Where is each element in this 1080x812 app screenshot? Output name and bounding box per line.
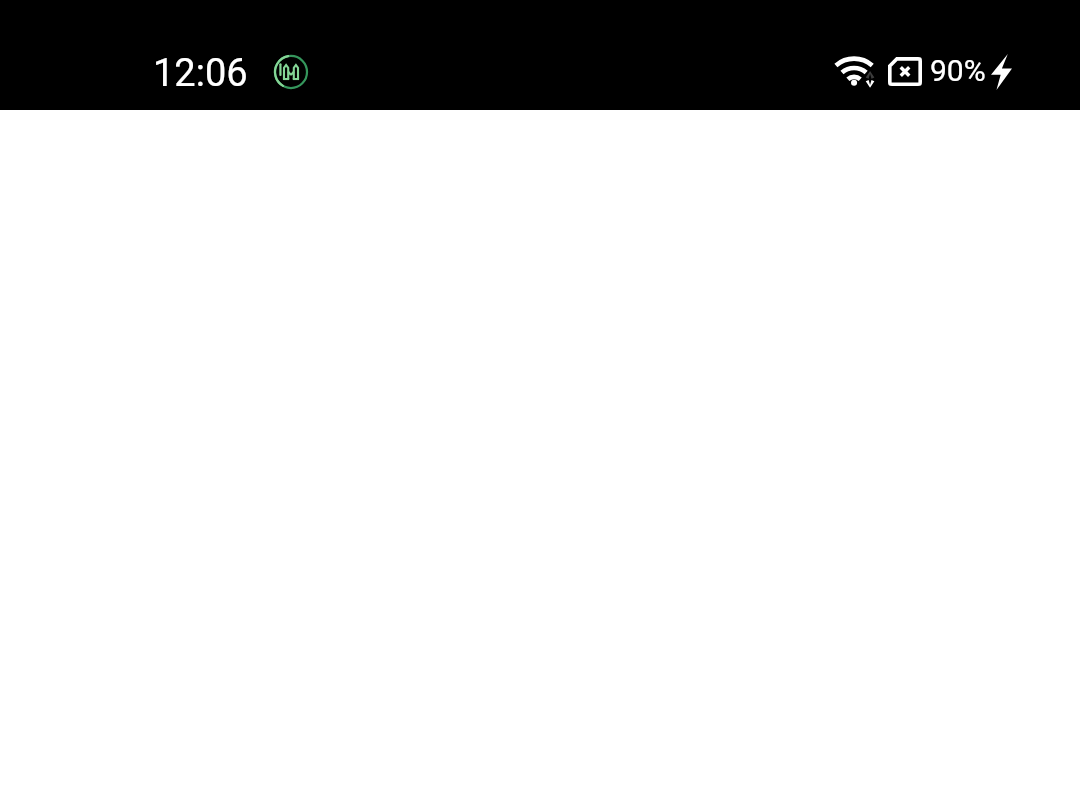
staticText: 90% bbox=[930, 53, 986, 88]
other: Battery charging bbox=[991, 54, 1012, 90]
other: App notification bbox=[273, 54, 309, 90]
staticText: 12:06 bbox=[153, 51, 248, 96]
other: No SIM card bbox=[888, 57, 922, 86]
other: Wi-Fi connected bbox=[835, 55, 876, 87]
